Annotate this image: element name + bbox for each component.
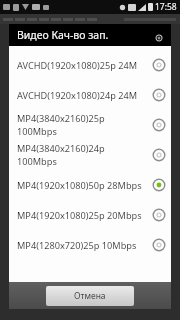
button[interactable]: MP4(1280x720)25p 10Mbps (10, 230, 170, 260)
button[interactable]: MP4(1920x1080)25p 20Mbps (10, 200, 170, 230)
button[interactable]: MP4(3840x2160)25p (10, 110, 170, 140)
staticText: MP4(3840x2160)25p (17, 112, 105, 125)
staticText: AVCHD(1920x1080)25p 24M (17, 59, 138, 72)
button[interactable]: AVCHD(1920x1080)24p 24M (10, 80, 170, 110)
button[interactable]: Отмена (46, 286, 134, 306)
staticText: 100Mbps (17, 155, 57, 168)
staticText: MP4(1920x1080)50p 28Mbps (17, 179, 142, 192)
staticText: 100Mbps (17, 125, 57, 138)
button[interactable]: AVCHD(1920x1080)25p 24M (10, 50, 170, 80)
staticText: 17:58 (155, 1, 177, 13)
staticText: MP4(3840x2160)24p (17, 142, 105, 155)
staticText: MP4(1280x720)25p 10Mbps (17, 239, 137, 252)
staticText: MP4(1920x1080)25p 20Mbps (17, 209, 142, 222)
button[interactable]: MP4(1920x1080)50p 28Mbps (10, 170, 170, 200)
staticText: Отмена (74, 290, 106, 302)
button[interactable]: MP4(3840x2160)24p (10, 140, 170, 170)
staticText: AVCHD(1920x1080)24p 24M (17, 89, 138, 102)
staticText: Видео Кач-во зап. (17, 28, 109, 42)
